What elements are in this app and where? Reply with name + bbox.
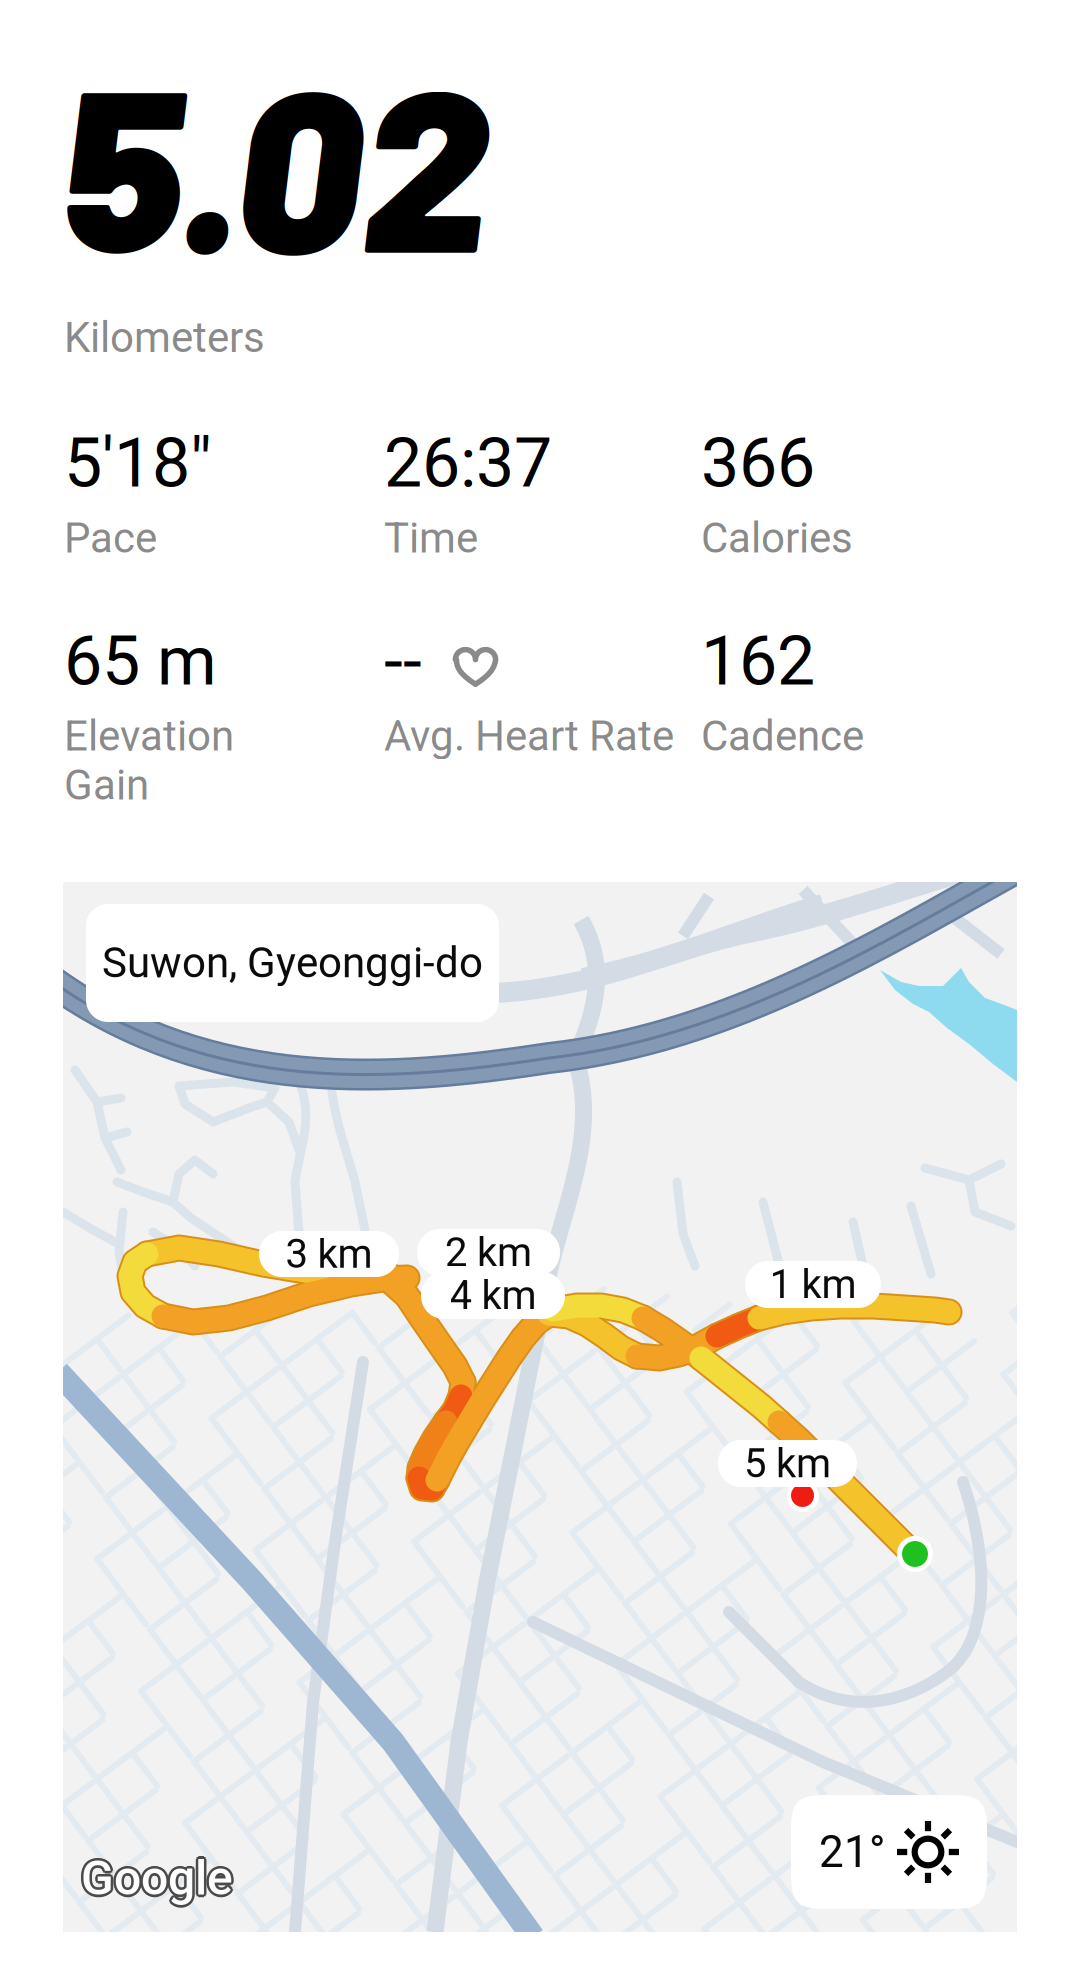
staticText: 162: [701, 621, 815, 701]
staticText: Elevation: [64, 711, 234, 761]
staticText: Google: [78, 1850, 230, 1906]
staticText: 2 km: [445, 1229, 532, 1276]
staticText: 5'18": [64, 423, 212, 503]
staticText: Google: [81, 1853, 233, 1909]
staticText: 5 km: [744, 1440, 831, 1487]
staticText: 1 km: [769, 1261, 856, 1308]
staticText: 65 m: [64, 621, 217, 701]
staticText: Pace: [64, 513, 157, 563]
staticText: Google: [84, 1850, 236, 1906]
staticText: --: [384, 621, 422, 701]
staticText: Google: [83, 1848, 235, 1904]
staticText: Google: [83, 1852, 235, 1908]
staticText: Kilometers: [64, 313, 265, 362]
staticText: Calories: [701, 513, 853, 563]
staticText: Cadence: [701, 711, 864, 761]
staticText: Google: [79, 1852, 231, 1908]
staticText: 5.02: [60, 26, 488, 298]
staticText: Google: [79, 1848, 231, 1904]
staticText: Google: [81, 1850, 233, 1906]
staticText: Google: [81, 1847, 233, 1904]
staticText: Gain: [64, 760, 149, 810]
staticText: 3 km: [285, 1231, 372, 1277]
staticText: 26:37: [384, 423, 552, 503]
staticText: 4 km: [449, 1272, 536, 1319]
staticText: Suwon, Gyeonggi-do: [102, 938, 483, 988]
staticText: 366: [701, 423, 815, 503]
staticText: 21°: [819, 1826, 885, 1878]
staticText: Time: [384, 513, 478, 563]
staticText: Avg. Heart Rate: [384, 711, 674, 761]
